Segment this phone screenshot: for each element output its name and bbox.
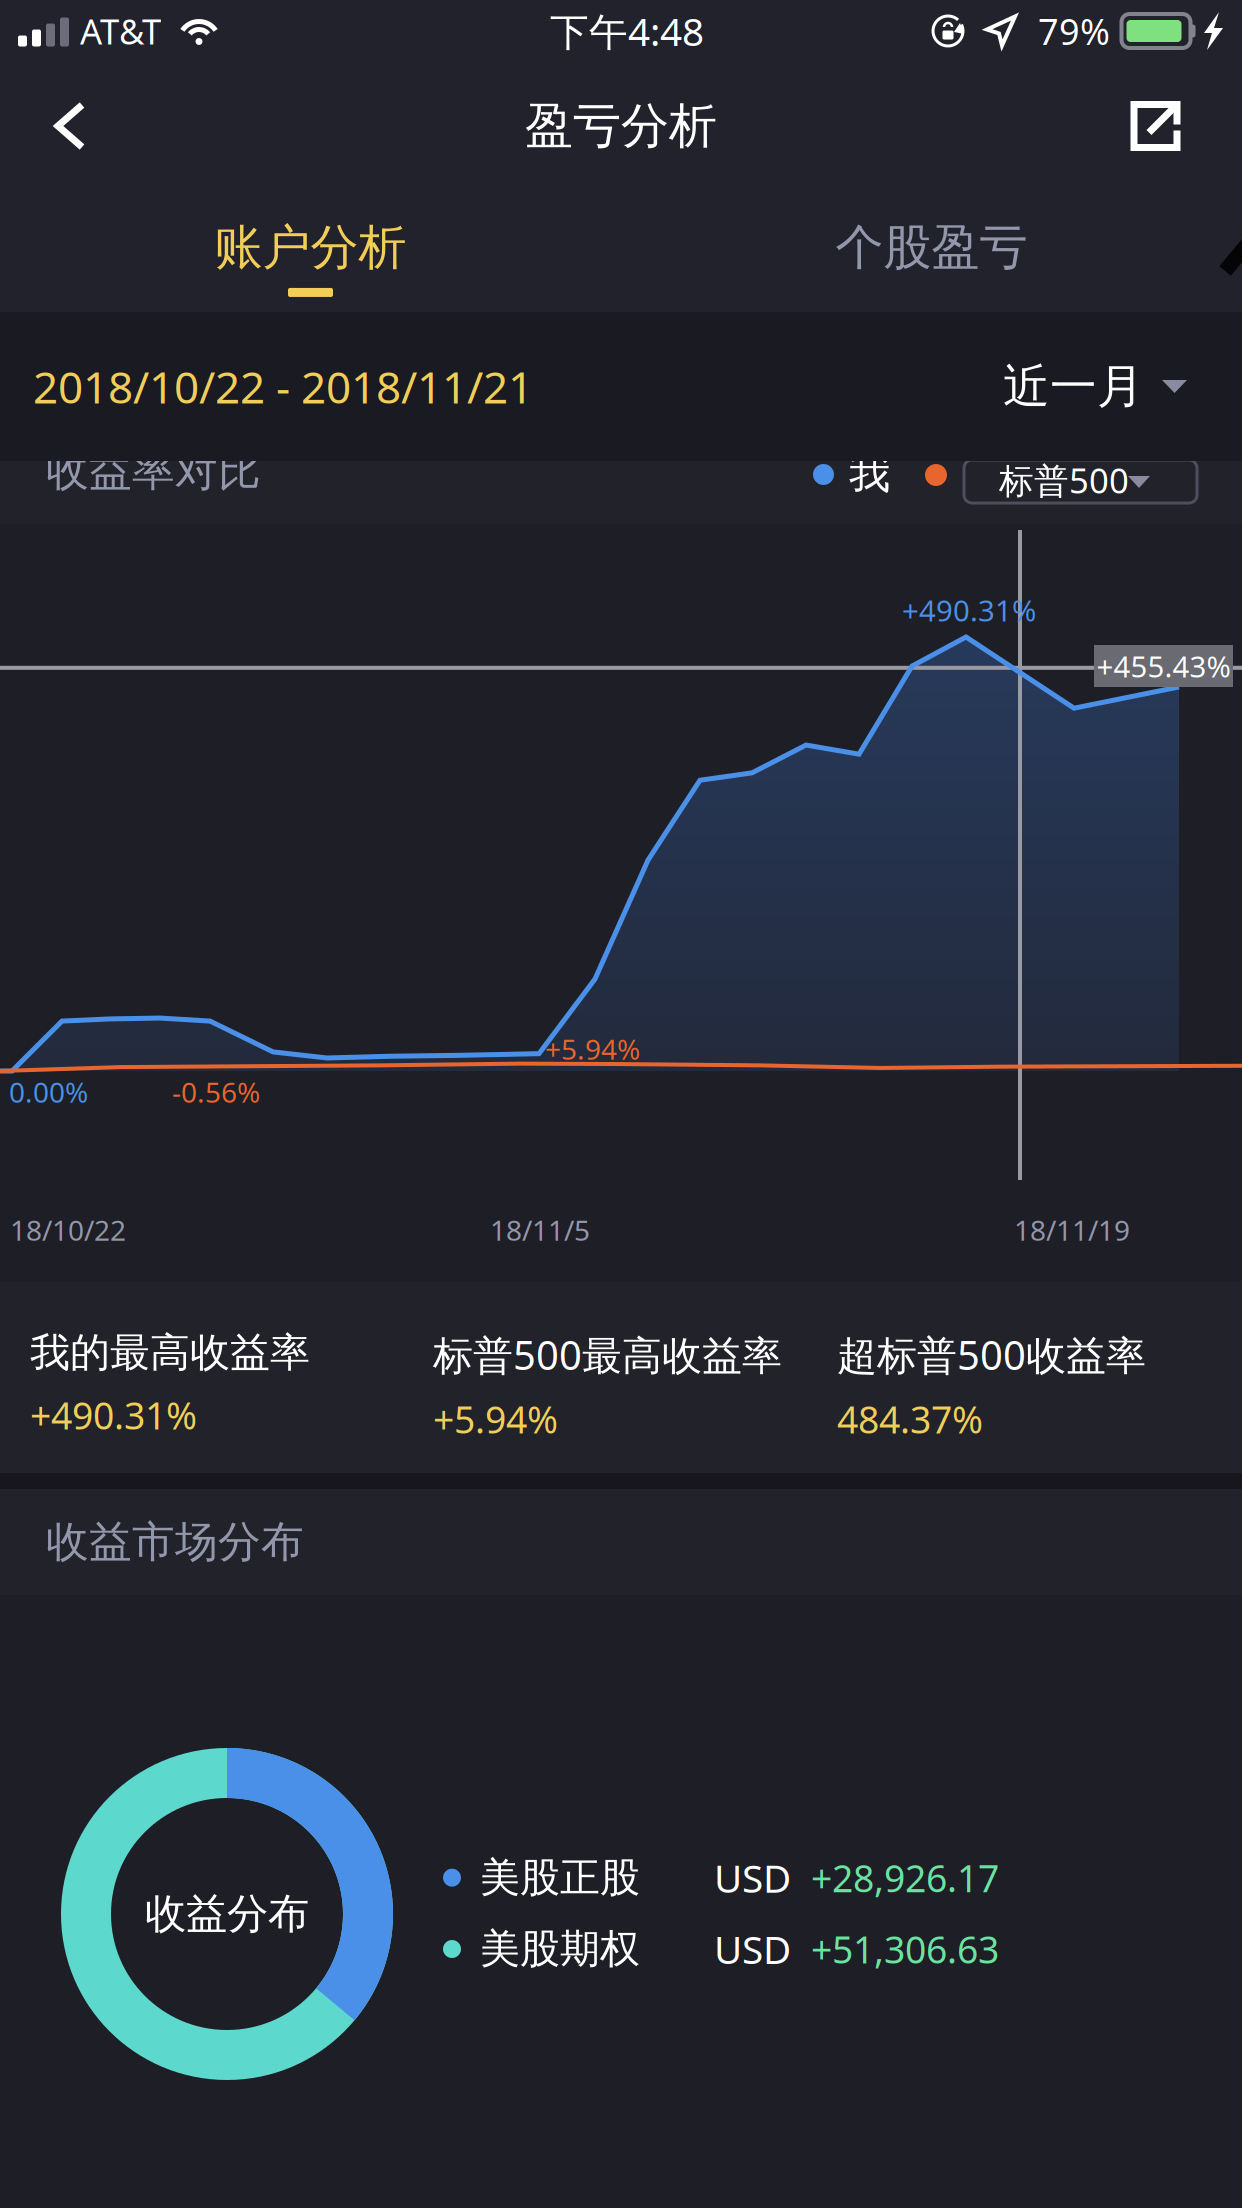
staticText: 18/11/19 [1014, 1211, 1130, 1249]
staticText: 2018/10/22 - 2018/11/21 [33, 357, 533, 416]
staticText: 我 [849, 449, 890, 499]
staticText: 近一月 [1003, 358, 1144, 415]
staticText: USD [714, 1852, 791, 1903]
staticText: 484.37% [837, 1394, 983, 1444]
staticText: +5.94% [545, 1030, 640, 1068]
staticText: +51,306.63 [811, 1924, 999, 1974]
button[interactable]: 账户分析 [0, 190, 621, 312]
staticText: 收益率对比 [46, 445, 261, 497]
staticText: 标普500 [999, 457, 1129, 503]
staticText: 账户分析 [214, 218, 406, 277]
button[interactable]: Share [1090, 62, 1242, 190]
button[interactable]: Back [0, 62, 126, 190]
button[interactable]: 近一月 [1003, 358, 1187, 415]
staticText: 收益分布 [145, 1889, 309, 1939]
staticText: 美股期权 [480, 1924, 640, 1974]
staticText: +490.31% [30, 1390, 197, 1440]
button[interactable]: 个股盈亏 [621, 190, 1242, 312]
staticText: 79% [1038, 7, 1110, 55]
button[interactable]: 标普500 [964, 460, 1197, 503]
staticText: 美股正股 [480, 1853, 640, 1902]
staticText: +5.94% [433, 1394, 558, 1444]
staticText: 0.00% [9, 1073, 88, 1111]
staticText: +490.31% [902, 590, 1036, 629]
staticText: +455.43% [1096, 646, 1230, 685]
staticText: 下午4:48 [550, 5, 704, 57]
staticText: 我的最高收益率 [30, 1328, 310, 1377]
staticText: 收益市场分布 [46, 1516, 304, 1568]
staticText: AT&T [80, 8, 161, 54]
staticText: USD [714, 1923, 791, 1975]
staticText: -0.56% [172, 1073, 260, 1111]
staticText: 超标普500收益率 [837, 1328, 1146, 1381]
staticText: +28,926.17 [811, 1853, 999, 1902]
staticText: 18/10/22 [10, 1211, 126, 1249]
staticText: 盈亏分析 [525, 96, 717, 155]
staticText: 18/11/5 [490, 1211, 590, 1249]
staticText: 个股盈亏 [835, 218, 1027, 277]
staticText: 标普500最高收益率 [433, 1328, 782, 1381]
